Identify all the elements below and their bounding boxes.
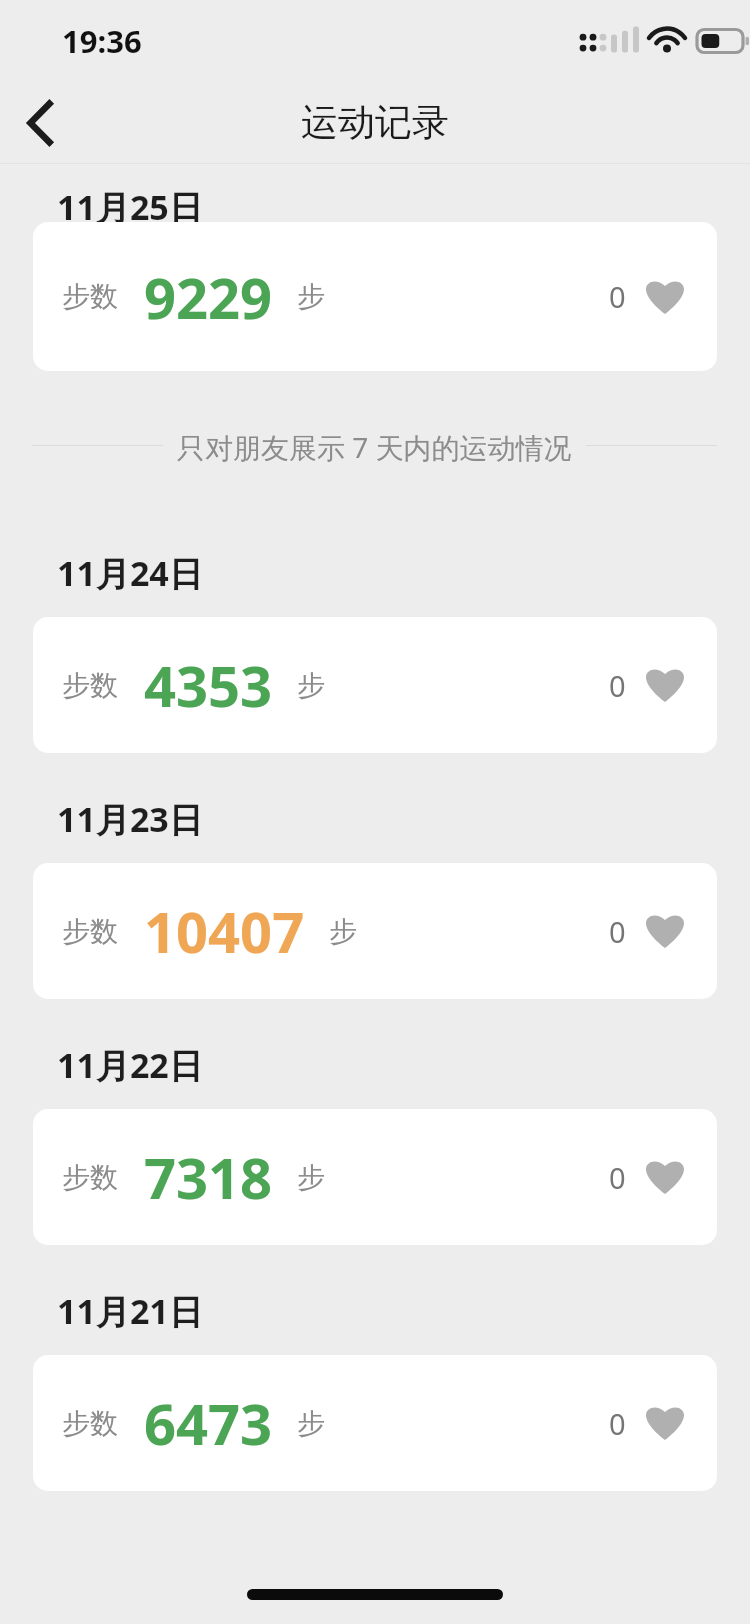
button[interactable]: 步数 [33,863,717,999]
staticText: 10407 [144,893,305,969]
staticText: 9229 [144,259,273,335]
staticText: 11月24日 [57,550,203,596]
staticText: 步 [297,1160,325,1195]
staticText: 11月22日 [57,1042,203,1088]
button[interactable]: Like [643,663,687,707]
button[interactable]: 步数 [33,222,717,371]
staticText: 0 [609,1404,626,1443]
staticText: 步 [297,1406,325,1441]
staticText: 0 [609,666,626,705]
button[interactable]: Back [0,82,84,163]
button[interactable]: 步数 [33,1355,717,1491]
staticText: 只对朋友展示 7 天内的运动情况 [177,428,572,462]
staticText: 4353 [144,647,273,723]
staticText: 6473 [144,1385,273,1461]
button[interactable]: 步数 [33,1109,717,1245]
staticText: 运动记录 [301,99,449,146]
staticText: 19:36 [62,20,142,62]
staticText: 0 [609,912,626,951]
staticText: 11月23日 [57,796,203,842]
staticText: 11月25日 [57,184,203,230]
button[interactable]: Like [643,1401,687,1445]
button[interactable]: Like [643,275,687,319]
staticText: 步数 [62,668,118,703]
staticText: 步数 [62,1406,118,1441]
staticText: 步数 [62,914,118,949]
staticText: 0 [609,277,626,316]
staticText: 步 [297,279,325,314]
staticText: 11月21日 [57,1288,203,1334]
staticText: 步 [297,668,325,703]
staticText: 步数 [62,1160,118,1195]
staticText: 步 [329,914,357,949]
staticText: 0 [609,1158,626,1197]
button[interactable]: Like [643,909,687,953]
staticText: 7318 [144,1139,273,1215]
button[interactable]: 步数 [33,617,717,753]
button[interactable]: Like [643,1155,687,1199]
staticText: 步数 [62,279,118,314]
